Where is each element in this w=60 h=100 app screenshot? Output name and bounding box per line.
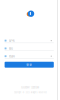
button[interactable]: 登录 [5,62,54,68]
staticText: 忘记密码？立即注册 [21,86,39,89]
staticText: 密码 [8,47,12,50]
button[interactable]: 密码 [5,44,54,52]
button[interactable]: 用户名 [5,36,54,44]
staticText: 用户名 [8,39,14,42]
button[interactable]: 忘记密码？立即注册 [21,86,39,89]
button[interactable]: 验证码 [5,52,54,59]
staticText: 验证码 [8,54,14,58]
staticText: 登录 [26,63,32,67]
staticText: Copyright © 2023 All Rights Reserved [13,91,46,94]
